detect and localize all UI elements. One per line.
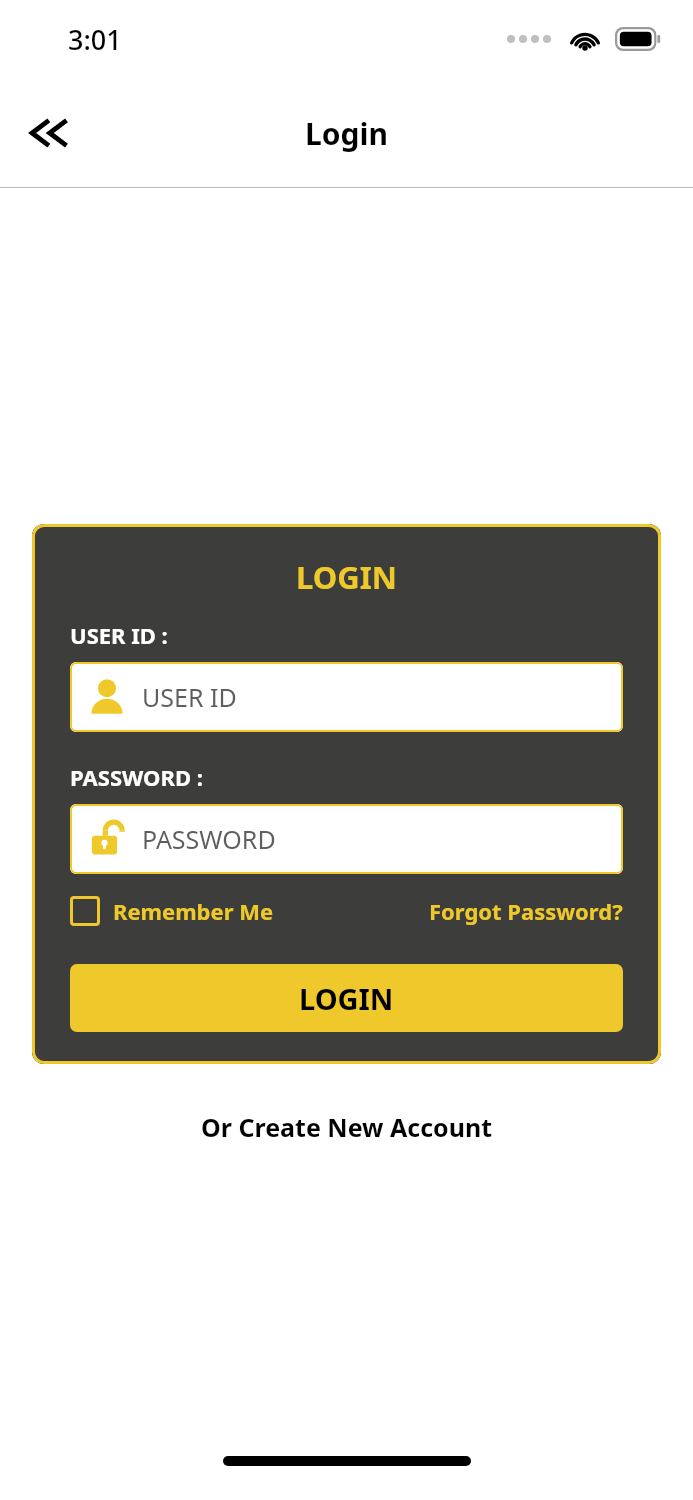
staticText: USER ID : <box>70 620 168 650</box>
button[interactable]: Remember Me <box>70 896 274 926</box>
staticText: PASSWORD : <box>70 762 203 792</box>
button[interactable]: Or Create New Account <box>193 1104 501 1150</box>
staticText: Login <box>305 113 388 154</box>
staticText: Or Create New Account <box>201 1110 493 1144</box>
button[interactable]: Forgot Password? <box>429 896 623 926</box>
button[interactable]: USER ID <box>70 662 623 732</box>
staticText: Remember Me <box>113 896 274 926</box>
button[interactable]: PASSWORD <box>70 804 623 874</box>
staticText: LOGIN <box>70 556 623 598</box>
staticText: Forgot Password? <box>429 896 623 926</box>
staticText: USER ID <box>142 680 237 714</box>
button[interactable]: LOGIN <box>70 964 623 1032</box>
staticText: 3:01 <box>68 21 122 58</box>
button[interactable]: Back <box>14 99 82 167</box>
staticText: PASSWORD <box>142 822 276 856</box>
staticText: LOGIN <box>299 979 394 1018</box>
